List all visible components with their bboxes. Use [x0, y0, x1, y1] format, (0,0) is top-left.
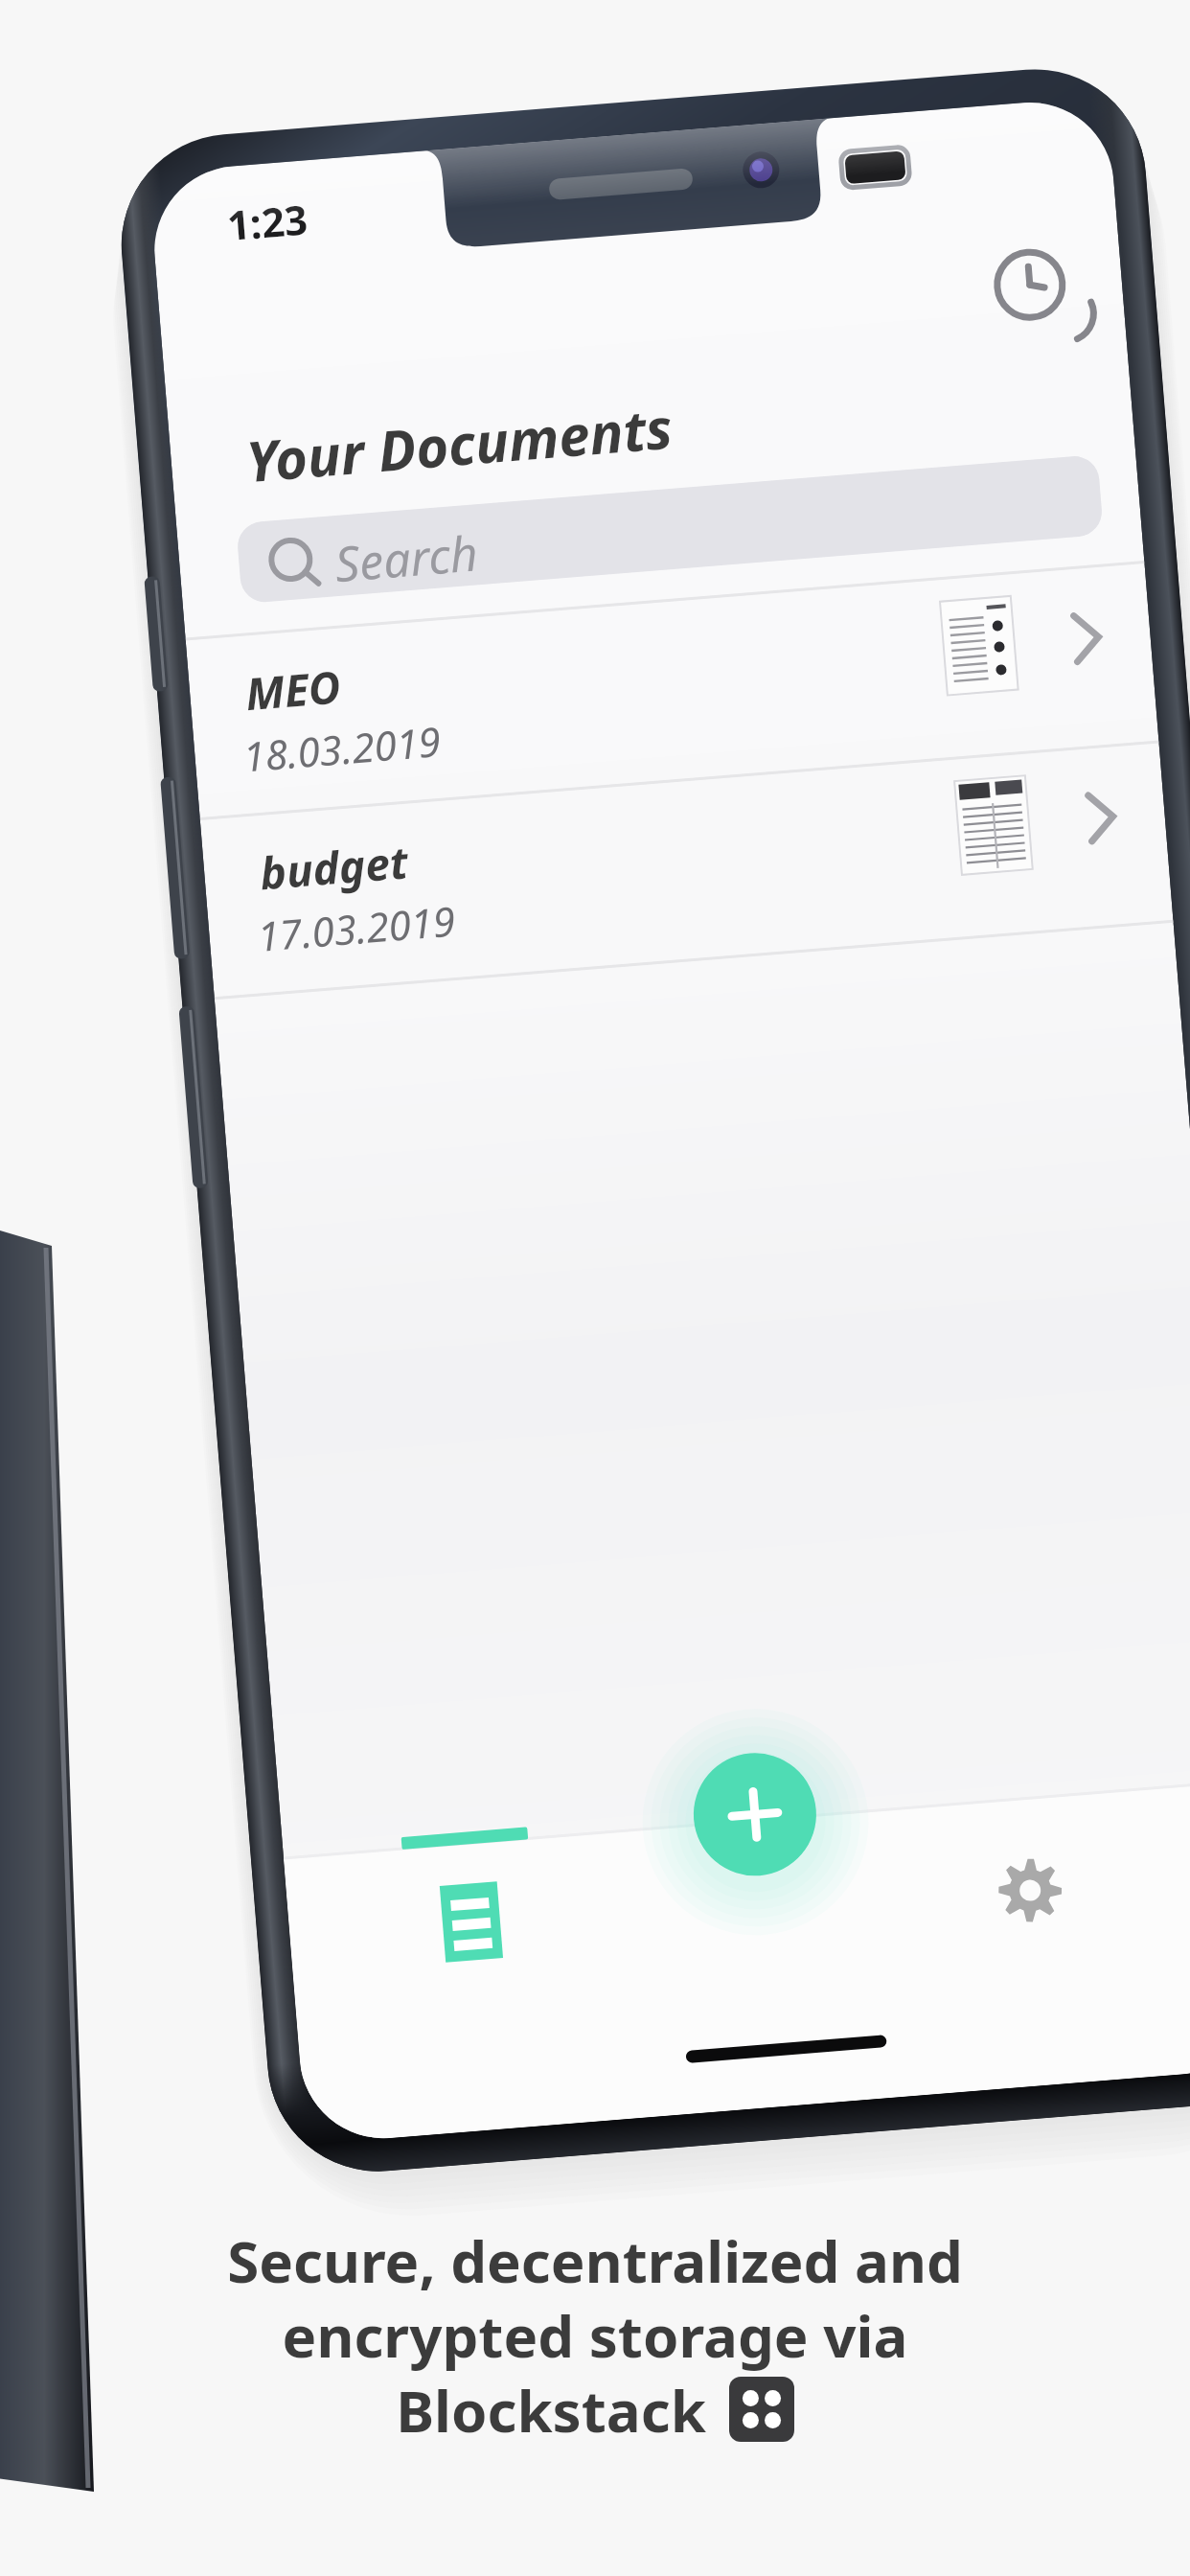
button[interactable]: [109, 305, 588, 355]
button[interactable]: Add document: [299, 834, 362, 897]
button[interactable]: History: [514, 63, 561, 111]
button[interactable]: Search: [123, 201, 592, 245]
button[interactable]: Settings: [439, 901, 485, 947]
button[interactable]: [115, 255, 594, 305]
button[interactable]: Documents: [151, 843, 222, 905]
